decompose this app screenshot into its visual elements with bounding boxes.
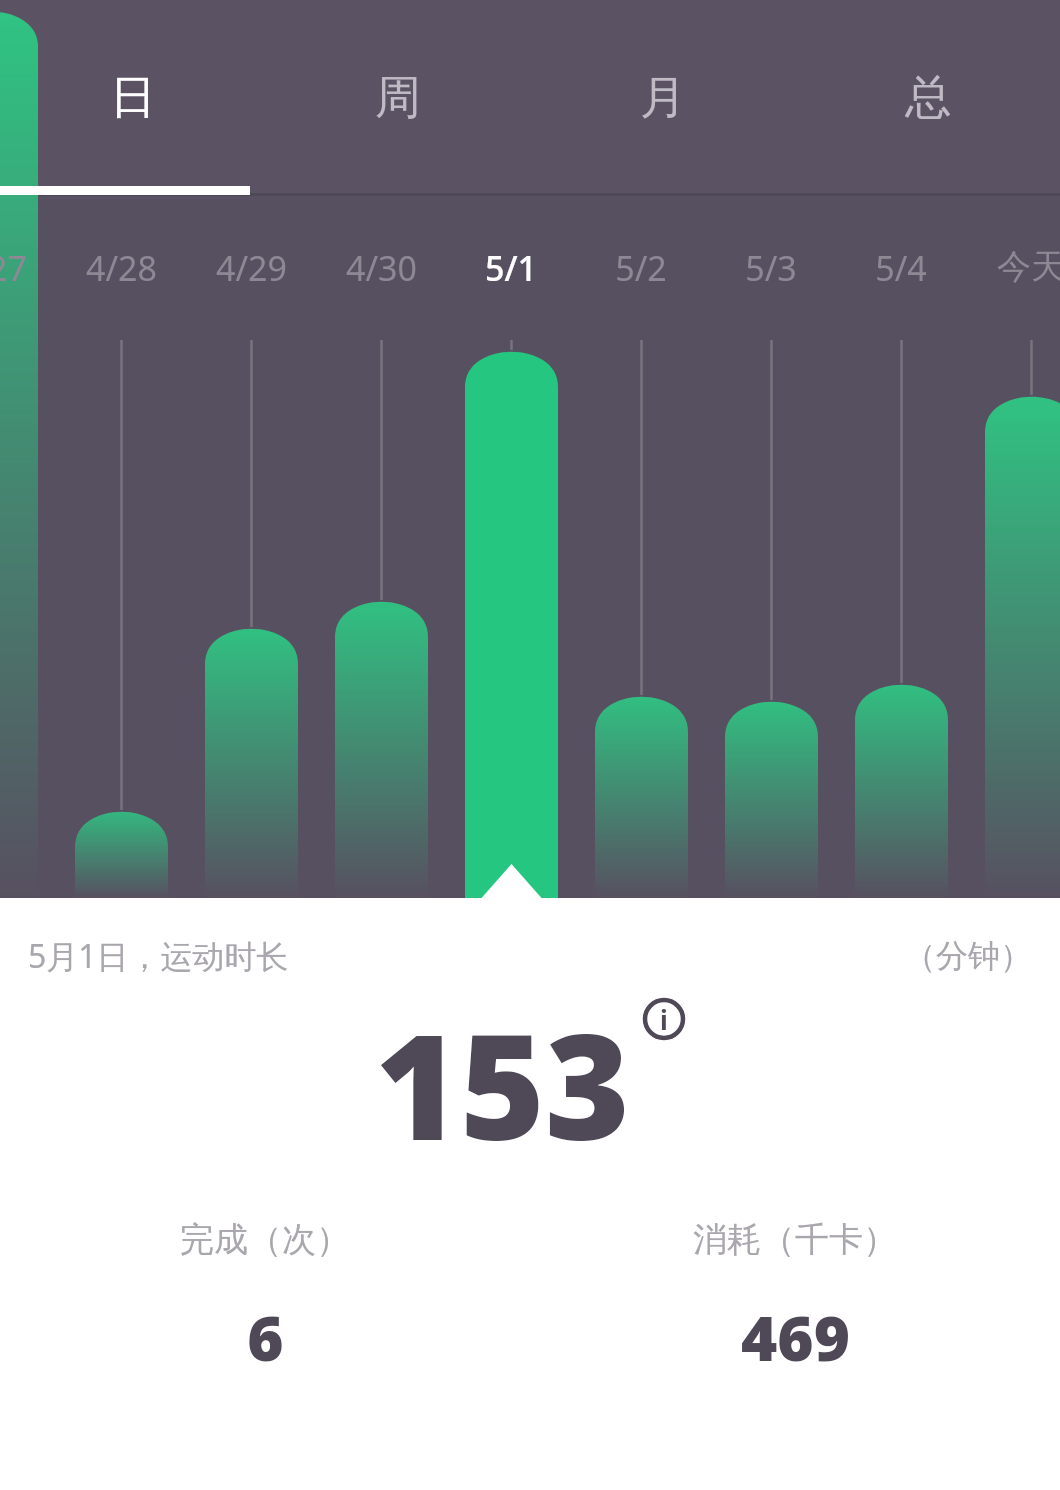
staticText: i: [660, 1002, 668, 1037]
staticText: 5/3: [745, 245, 797, 291]
staticText: （分钟）: [904, 936, 1032, 976]
button[interactable]: 4/30: [321, 245, 441, 305]
button[interactable]: 4/28: [61, 245, 181, 305]
staticText: 469: [741, 1295, 850, 1379]
button[interactable]: 完成（次）: [0, 1218, 530, 1379]
button[interactable]: 周: [265, 0, 530, 196]
staticText: 4/30: [346, 245, 417, 291]
button[interactable]: 4/27: [0, 245, 51, 305]
staticText: 5/1: [485, 245, 537, 291]
button[interactable]: 4/29: [191, 245, 311, 305]
button[interactable]: 5/4: [841, 245, 961, 305]
staticText: 6: [247, 1295, 284, 1379]
staticText: 5/2: [615, 245, 667, 291]
staticText: 完成（次）: [180, 1218, 350, 1261]
staticText: 消耗（千卡）: [693, 1218, 897, 1261]
staticText: 月: [640, 69, 686, 127]
staticText: 总: [905, 69, 951, 127]
staticText: 4/27: [0, 245, 27, 291]
button[interactable]: 5/1: [451, 245, 571, 305]
button[interactable]: 5/2: [581, 245, 701, 305]
button[interactable]: 日: [0, 0, 265, 196]
staticText: 今天: [997, 245, 1060, 288]
button[interactable]: 消耗（千卡）: [530, 1218, 1060, 1379]
button[interactable]: 今天: [971, 245, 1060, 305]
staticText: 5/4: [875, 245, 927, 291]
staticText: 4/28: [86, 245, 157, 291]
staticText: 5月1日，运动时长: [28, 934, 289, 978]
button[interactable]: 月: [530, 0, 795, 196]
staticText: 日: [110, 69, 156, 127]
button[interactable]: 总: [795, 0, 1060, 196]
staticText: 153: [375, 985, 630, 1182]
button[interactable]: 5/3: [711, 245, 831, 305]
staticText: 周: [375, 69, 421, 127]
button[interactable]: Info: [642, 997, 686, 1041]
staticText: 4/29: [216, 245, 287, 291]
